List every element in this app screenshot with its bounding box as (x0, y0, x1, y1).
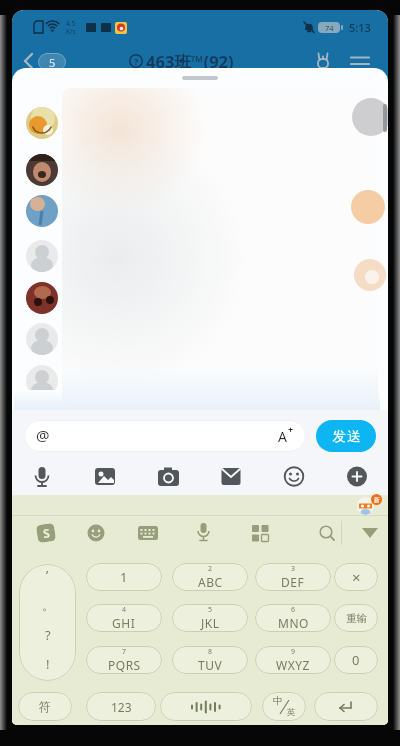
button[interactable] (94, 465, 116, 489)
button[interactable] (303, 21, 315, 34)
staticText: 6 (291, 605, 296, 615)
button[interactable] (283, 465, 305, 489)
button[interactable]: 5 (172, 604, 248, 632)
button[interactable]: S (36, 523, 56, 543)
button[interactable]: 5 (38, 53, 66, 71)
staticText: 2 (208, 564, 213, 574)
staticText: 新 (374, 496, 380, 504)
button[interactable]: 9 (255, 646, 331, 674)
button[interactable]: 0 (334, 646, 378, 674)
button[interactable]: 2 (172, 563, 248, 591)
button[interactable]: A (270, 420, 300, 452)
button[interactable] (34, 21, 43, 33)
staticText: 463班™(92) (146, 50, 234, 72)
staticText: WXYZ (276, 657, 310, 673)
staticText: PQRS (108, 657, 141, 673)
button[interactable] (319, 525, 336, 542)
staticText: K/s (66, 27, 76, 35)
button[interactable]: 中 (262, 692, 306, 721)
button[interactable] (195, 523, 212, 543)
staticText: 9 (291, 647, 296, 657)
button[interactable] (220, 465, 242, 489)
button[interactable]: 重输 (334, 604, 378, 632)
button[interactable] (46, 21, 59, 33)
staticText: 。 (42, 598, 54, 613)
staticText: × (352, 567, 361, 587)
button[interactable] (350, 54, 370, 68)
staticText: 中 (273, 694, 283, 707)
staticText: 4 (122, 605, 127, 615)
button[interactable]: 1 (86, 563, 162, 591)
button[interactable] (20, 52, 38, 70)
staticText: JKL (201, 615, 220, 631)
button[interactable] (19, 564, 76, 681)
staticText: 4.5 (66, 19, 76, 27)
button[interactable] (357, 497, 374, 515)
staticText: 发送 (332, 428, 361, 445)
button[interactable] (26, 365, 58, 397)
button[interactable] (312, 51, 334, 71)
staticText: 重输 (346, 612, 367, 625)
staticText: DEF (281, 574, 305, 590)
button[interactable]: 8 (172, 646, 248, 674)
button[interactable] (26, 323, 58, 355)
staticText: 74 (325, 23, 334, 33)
staticText: 5:13 (349, 20, 371, 35)
staticText: ABC (198, 574, 223, 590)
button[interactable]: 符 (18, 692, 72, 721)
button[interactable]: 3 (255, 563, 331, 591)
staticText: 3 (291, 564, 296, 574)
staticText: S (42, 524, 51, 541)
button[interactable] (26, 240, 58, 272)
button[interactable] (26, 107, 58, 139)
button[interactable]: 7 (86, 646, 162, 674)
button[interactable] (362, 528, 378, 539)
staticText: ? (134, 55, 139, 67)
button[interactable]: 123 (86, 692, 156, 721)
button[interactable]: 6 (255, 604, 331, 632)
staticText: ? (45, 626, 51, 644)
staticText: 8 (208, 647, 213, 657)
button[interactable]: × (334, 563, 378, 591)
button[interactable] (26, 195, 58, 227)
staticText: 7 (122, 647, 127, 657)
staticText: MNO (278, 615, 309, 631)
button[interactable] (129, 54, 143, 68)
staticText: A (278, 427, 287, 446)
staticText: 符 (39, 699, 51, 714)
button[interactable] (138, 526, 158, 541)
button[interactable] (87, 524, 105, 542)
button[interactable]: @ (24, 420, 306, 452)
button[interactable] (252, 525, 269, 542)
staticText: 0 (352, 651, 360, 669)
button[interactable] (31, 465, 53, 489)
staticText: ’ (46, 566, 49, 584)
staticText: @ (36, 425, 50, 445)
button[interactable] (26, 154, 58, 186)
staticText: 123 (111, 699, 132, 715)
button[interactable]: 4 (86, 604, 162, 632)
staticText: ! (46, 655, 50, 673)
button[interactable] (160, 692, 252, 721)
staticText: 5 (208, 605, 213, 615)
button[interactable] (157, 465, 180, 489)
button[interactable] (314, 692, 378, 721)
button[interactable] (26, 282, 58, 314)
staticText: + (288, 423, 294, 435)
button[interactable] (346, 465, 368, 489)
staticText: 英 (287, 707, 296, 718)
button[interactable]: 发送 (316, 420, 376, 452)
staticText: 1 (120, 568, 128, 586)
staticText: 5 (49, 55, 56, 70)
staticText: GHI (112, 615, 136, 631)
staticText: TUV (198, 657, 223, 673)
